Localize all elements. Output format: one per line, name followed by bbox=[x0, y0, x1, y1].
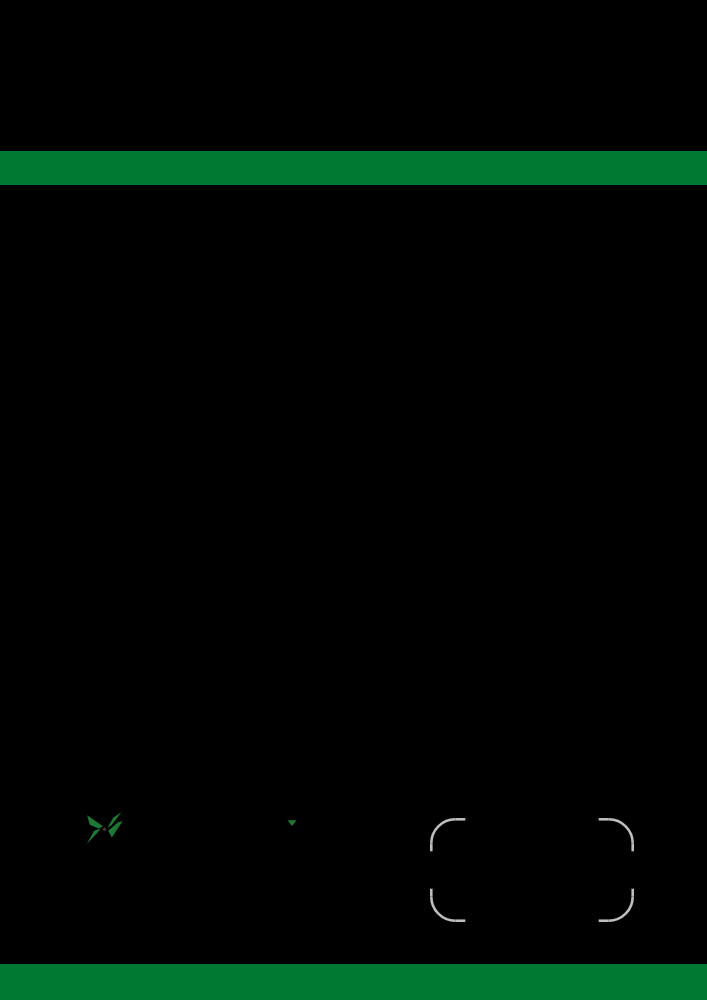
button[interactable]: Logo bbox=[86, 810, 123, 847]
button[interactable]: Expand bbox=[284, 816, 300, 830]
button[interactable]: Scan frame bbox=[430, 818, 634, 922]
